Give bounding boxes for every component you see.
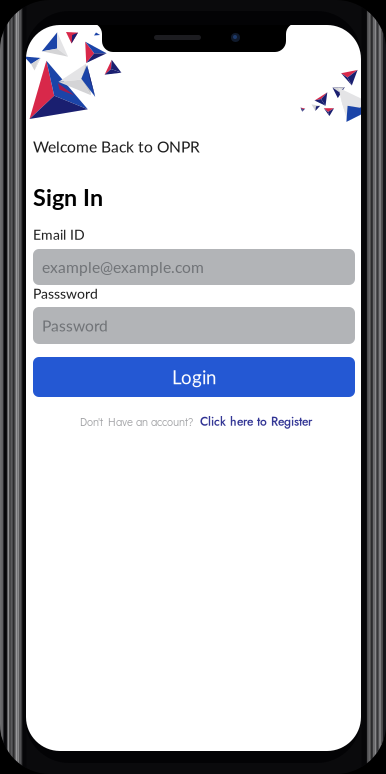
staticText: Sign In bbox=[33, 183, 103, 211]
staticText: Email ID bbox=[33, 226, 85, 243]
staticText: Don't Have an account? bbox=[80, 414, 193, 429]
button[interactable]: Click here to Register bbox=[200, 413, 312, 430]
staticText: Click here to Register bbox=[200, 413, 312, 430]
button[interactable]: Login bbox=[33, 357, 355, 397]
staticText: Passsword bbox=[33, 285, 98, 302]
staticText: Password bbox=[42, 316, 108, 335]
staticText: Welcome Back to ONPR bbox=[33, 137, 200, 156]
staticText: Login bbox=[172, 366, 216, 388]
staticText: example@example.com bbox=[42, 258, 204, 276]
